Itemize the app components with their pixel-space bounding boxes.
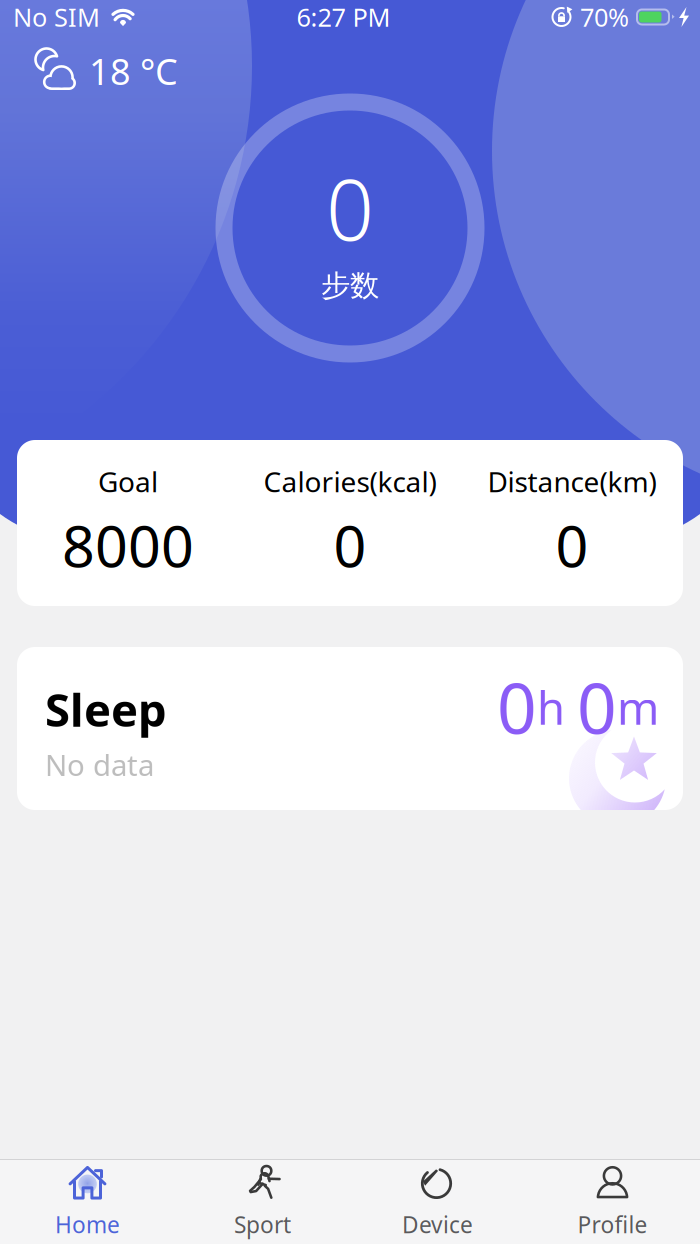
staticText: 0: [555, 507, 588, 583]
staticText: Sleep: [45, 679, 167, 739]
staticText: h: [537, 677, 565, 737]
staticText: 0: [326, 152, 374, 264]
staticText: No data: [45, 745, 154, 784]
button[interactable]: Profile: [525, 1160, 700, 1244]
staticText: Calories(kcal): [263, 463, 436, 500]
staticText: 0: [577, 661, 617, 753]
staticText: Home: [55, 1209, 120, 1239]
staticText: Sport: [234, 1209, 291, 1239]
staticText: 步数: [321, 268, 379, 304]
staticText: 0: [333, 507, 366, 583]
staticText: 18 °C: [89, 47, 178, 95]
staticText: m: [617, 677, 659, 737]
staticText: No SIM: [13, 0, 100, 34]
staticText: 0: [497, 661, 537, 753]
button[interactable]: Home: [0, 1160, 175, 1244]
staticText: Distance(km): [487, 463, 656, 500]
staticText: Goal: [98, 463, 158, 500]
staticText: 8000: [62, 507, 194, 583]
staticText: Profile: [577, 1209, 647, 1239]
staticText: 70%: [580, 0, 629, 34]
button[interactable]: Sleep: [17, 647, 683, 810]
button[interactable]: Sport: [175, 1160, 350, 1244]
staticText: Device: [402, 1209, 473, 1239]
button[interactable]: Device: [350, 1160, 525, 1244]
staticText: 6:27 PM: [296, 0, 390, 34]
